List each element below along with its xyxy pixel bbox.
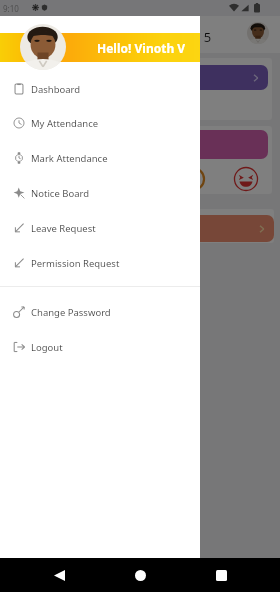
- button[interactable]: Back: [48, 564, 70, 586]
- button[interactable]: My Attendance: [0, 106, 200, 140]
- button[interactable]: Mark Attendance: [0, 141, 200, 175]
- staticText: Dashboard: [31, 83, 81, 96]
- staticText: Leave Request: [31, 222, 96, 235]
- button[interactable]: Home: [129, 564, 151, 586]
- staticText: My Attendance - 5: [101, 28, 212, 46]
- staticText: My Attendance: [31, 117, 99, 130]
- button[interactable]: Recents: [210, 564, 232, 586]
- button[interactable]: Change Password: [0, 295, 200, 329]
- button[interactable]: Leave Request: [0, 211, 200, 245]
- staticText: Logout: [31, 341, 63, 354]
- staticText: Notice Board: [31, 187, 90, 200]
- button[interactable]: Notice Board: [0, 176, 200, 210]
- button[interactable]: Logout: [0, 330, 200, 364]
- staticText: 9:10: [3, 3, 19, 14]
- button[interactable]: Permission Request: [0, 246, 200, 280]
- button[interactable]: Dashboard: [0, 72, 200, 106]
- staticText: Hello! Vinoth V: [97, 40, 186, 56]
- staticText: Permission Request: [31, 257, 120, 270]
- staticText: Change Password: [31, 306, 111, 319]
- staticText: Mark Attendance: [31, 152, 108, 165]
